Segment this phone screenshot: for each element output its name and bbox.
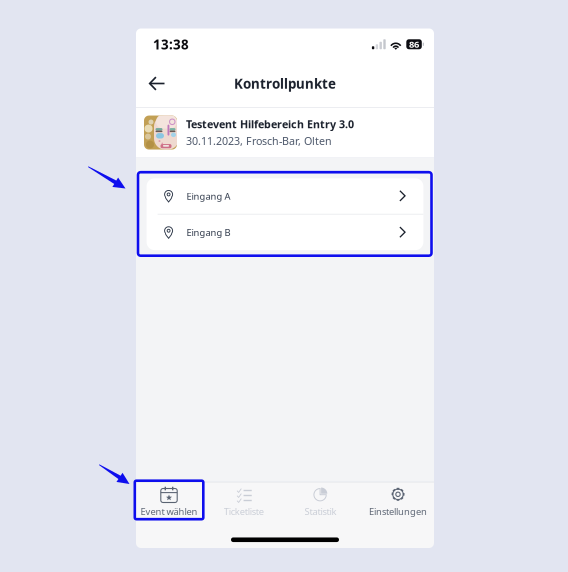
button[interactable]: Statistik xyxy=(282,485,359,518)
staticText: Event wählen xyxy=(140,505,197,518)
button[interactable]: Ticketliste xyxy=(206,485,282,518)
staticText: 13:38 xyxy=(153,35,189,53)
staticText: 86 xyxy=(409,38,419,50)
staticText: Kontrollpunkte xyxy=(234,75,336,92)
button[interactable]: Event wählen xyxy=(132,485,206,518)
button[interactable]: Back xyxy=(144,67,170,99)
button[interactable]: Eingang B xyxy=(147,215,423,250)
staticText: Eingang B xyxy=(187,226,231,239)
staticText: Ticketliste xyxy=(224,505,264,518)
staticText: 30.11.2023, Frosch-Bar, Olten xyxy=(186,134,332,148)
staticText: Eingang A xyxy=(187,190,231,202)
button[interactable]: Einstellungen xyxy=(359,485,437,518)
button[interactable]: Testevent Hilfebereich Entry 3.0 xyxy=(136,108,434,157)
button[interactable]: Eingang A xyxy=(147,178,423,214)
staticText: Statistik xyxy=(304,505,336,518)
staticText: Testevent Hilfebereich Entry 3.0 xyxy=(186,117,354,131)
staticText: Einstellungen xyxy=(369,505,427,518)
